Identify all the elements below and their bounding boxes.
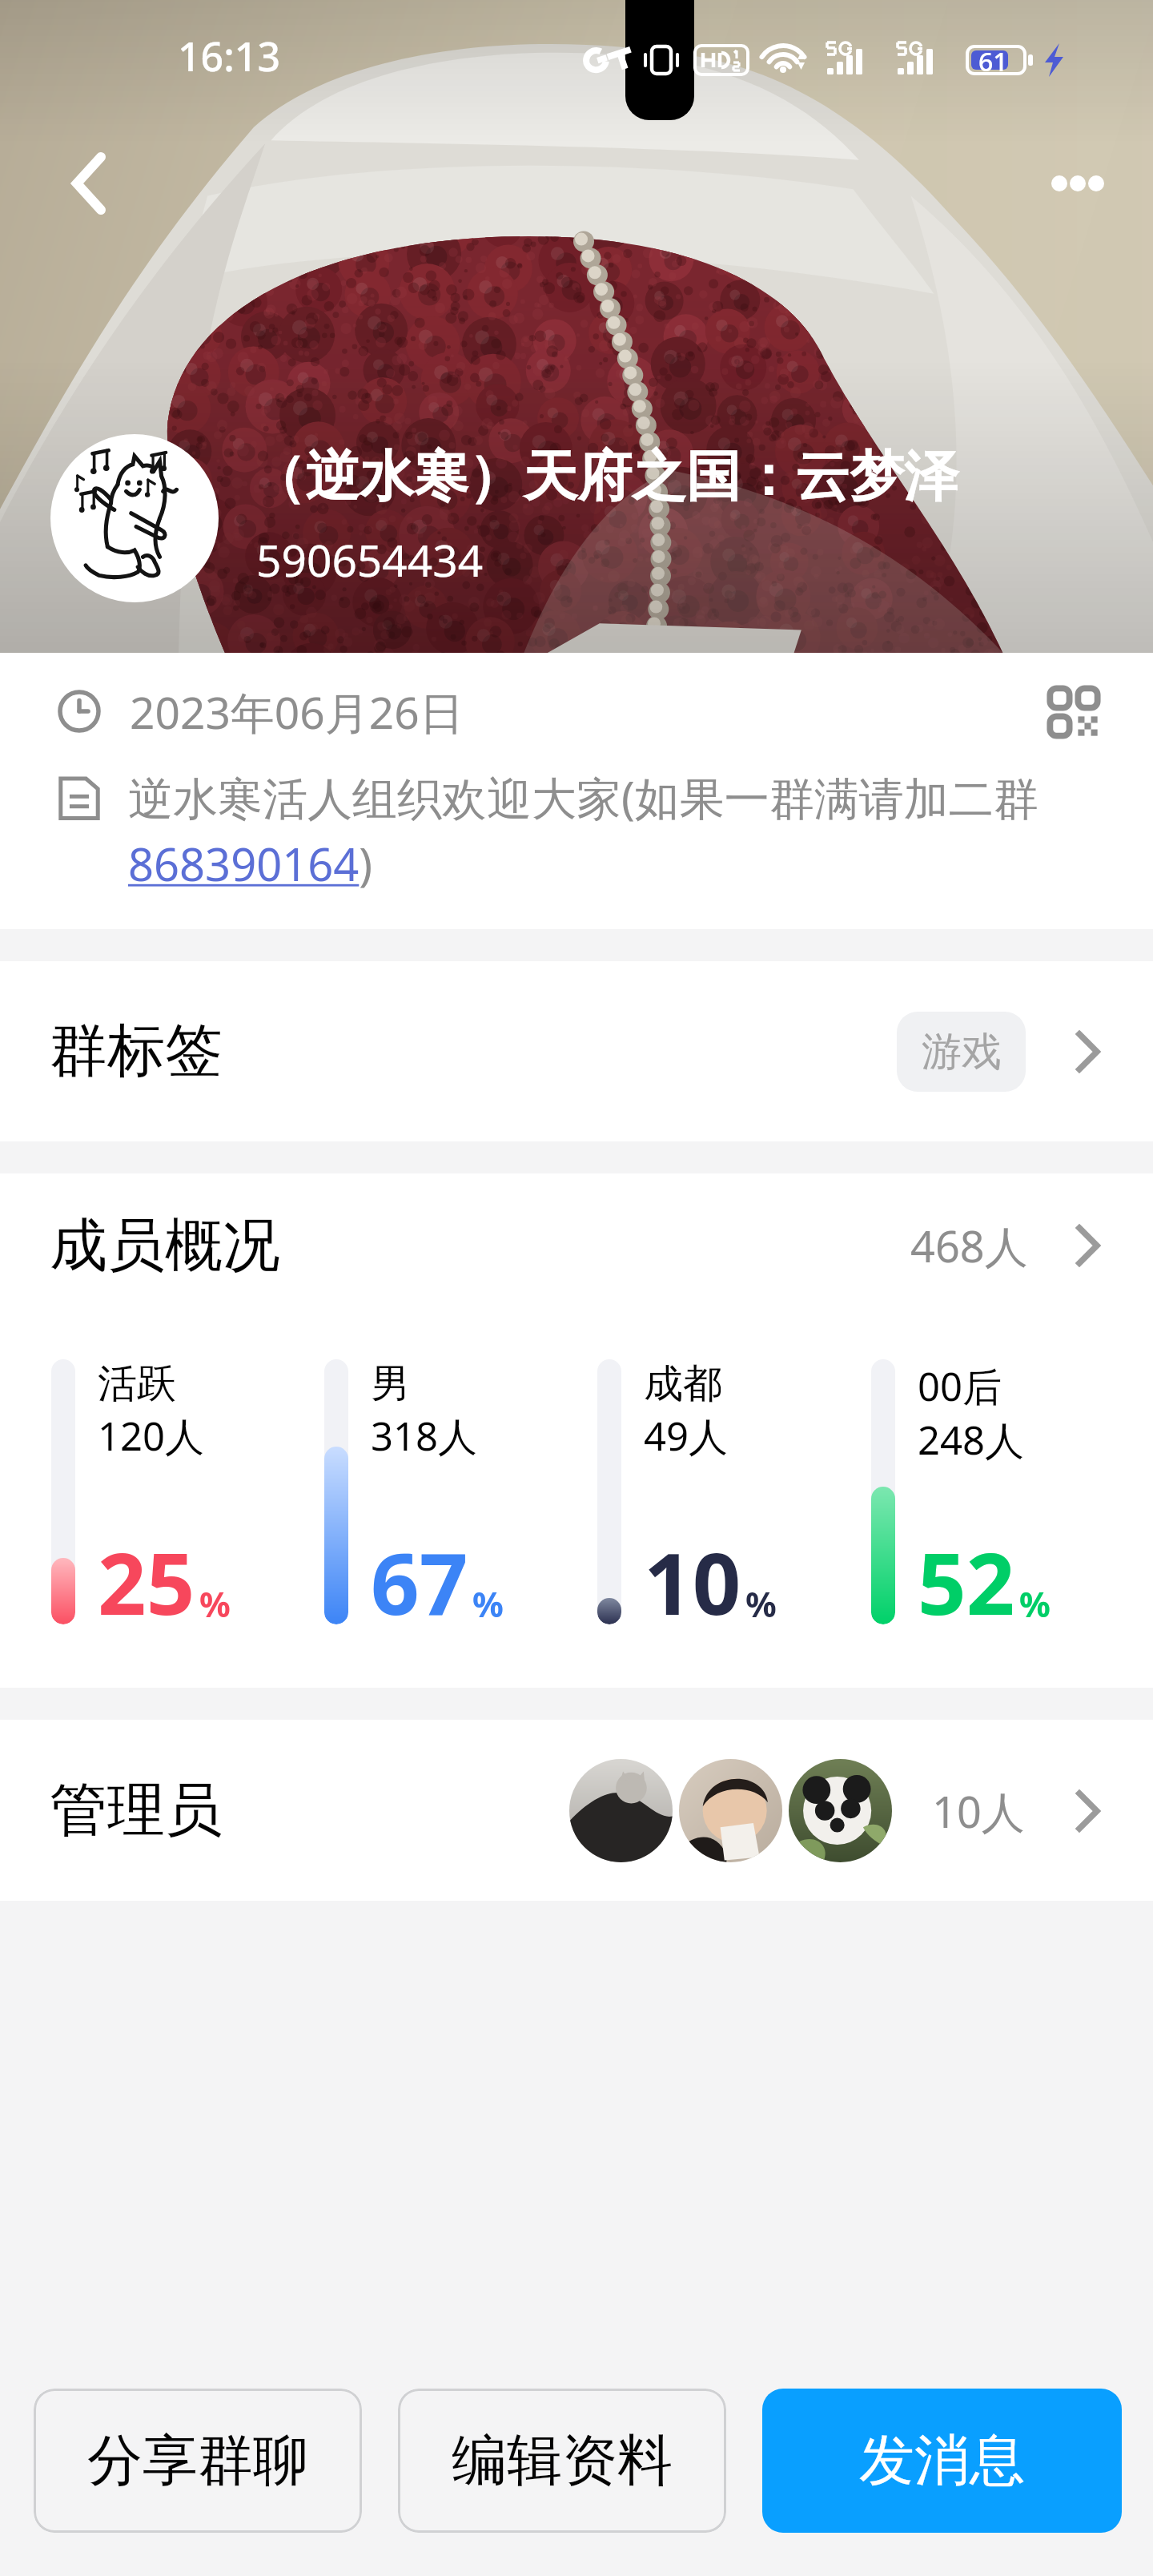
staticText: 120人 — [98, 1409, 205, 1463]
staticText: 318人 — [371, 1409, 478, 1463]
button[interactable]: 群标签 — [0, 961, 1153, 1141]
staticText: % — [745, 1580, 777, 1628]
staticText: 49人 — [644, 1409, 729, 1463]
staticText: 管理员 — [50, 1774, 223, 1847]
staticText: 590654434 — [256, 529, 484, 590]
button[interactable]: 编辑资料 — [398, 2389, 726, 2533]
staticText: 2023年06月26日 — [130, 682, 464, 742]
staticText: 67 — [371, 1524, 468, 1640]
staticText: 52 — [918, 1524, 1015, 1640]
staticText: 00后 — [918, 1359, 1002, 1413]
staticText: 10 — [644, 1524, 741, 1640]
staticText: % — [1019, 1580, 1051, 1628]
staticText: 游戏 — [922, 1027, 1002, 1077]
button[interactable]: 管理员 — [0, 1720, 1153, 1901]
button[interactable]: Back — [33, 135, 129, 231]
staticText: 活跃 — [98, 1359, 176, 1409]
button[interactable]: Group avatar — [50, 434, 219, 602]
staticText: 61 — [978, 44, 1008, 79]
staticText: 逆水寒活人组织欢迎大家(如果一群满请加二群868390164) — [128, 767, 1111, 894]
button[interactable]: 发消息 — [762, 2389, 1122, 2533]
staticText: 男 — [371, 1359, 410, 1409]
staticText: 248人 — [918, 1413, 1025, 1467]
button[interactable]: Group QR code — [1049, 687, 1099, 737]
staticText: （逆水寒）天府之国：云梦泽 — [251, 443, 958, 512]
staticText: 10人 — [932, 1781, 1025, 1841]
staticText: 群标签 — [50, 1015, 223, 1088]
staticText: 分享群聊 — [87, 2426, 308, 2496]
staticText: 468人 — [910, 1216, 1028, 1275]
staticText: % — [199, 1580, 231, 1628]
staticText: 发消息 — [859, 2426, 1025, 2496]
staticText: % — [472, 1580, 504, 1628]
button[interactable]: More options — [1033, 135, 1129, 231]
staticText: 编辑资料 — [452, 2426, 673, 2496]
staticText: 25 — [98, 1524, 195, 1640]
staticText: 成员概况 — [50, 1210, 280, 1282]
button[interactable]: 成员概况 — [0, 1173, 1153, 1318]
staticText: 成都 — [644, 1359, 722, 1409]
staticText: 16:13 — [178, 29, 280, 83]
button[interactable]: 分享群聊 — [34, 2389, 362, 2533]
